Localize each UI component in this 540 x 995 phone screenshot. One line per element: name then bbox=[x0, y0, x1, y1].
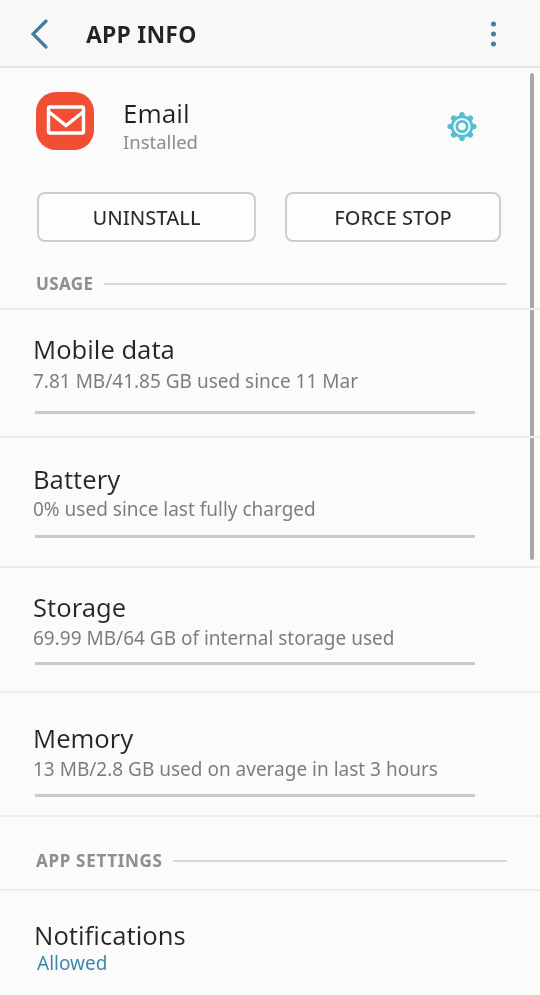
button[interactable]: Mobile data bbox=[0, 322, 540, 415]
staticText: Mobile data bbox=[33, 332, 175, 367]
button[interactable]: Notifications bbox=[0, 907, 540, 995]
staticText: 0% used since last fully charged bbox=[33, 496, 316, 522]
button[interactable] bbox=[18, 10, 66, 58]
button[interactable]: FORCE STOP bbox=[285, 192, 501, 242]
staticText: FORCE STOP bbox=[334, 204, 452, 231]
staticText: Memory bbox=[33, 721, 134, 756]
button[interactable]: Storage bbox=[0, 580, 540, 666]
staticText: 69.99 MB/64 GB of internal storage used bbox=[33, 625, 395, 651]
button[interactable]: Battery bbox=[0, 452, 540, 539]
button[interactable]: UNINSTALL bbox=[37, 192, 256, 242]
staticText: Battery bbox=[33, 462, 121, 497]
button[interactable]: Memory bbox=[0, 711, 540, 798]
staticText: Notifications bbox=[34, 918, 186, 953]
staticText: USAGE bbox=[36, 272, 94, 295]
staticText: 13 MB/2.8 GB used on average in last 3 h… bbox=[33, 756, 438, 782]
button[interactable] bbox=[438, 102, 486, 150]
staticText: APP INFO bbox=[86, 18, 197, 49]
button[interactable] bbox=[470, 10, 518, 58]
staticText: Installed bbox=[123, 129, 198, 154]
staticText: APP SETTINGS bbox=[36, 849, 163, 872]
staticText: Email bbox=[123, 95, 190, 130]
staticText: Allowed bbox=[37, 950, 108, 976]
staticText: Storage bbox=[33, 590, 127, 625]
staticText: UNINSTALL bbox=[92, 204, 201, 231]
staticText: 7.81 MB/41.85 GB used since 11 Mar bbox=[33, 368, 359, 394]
